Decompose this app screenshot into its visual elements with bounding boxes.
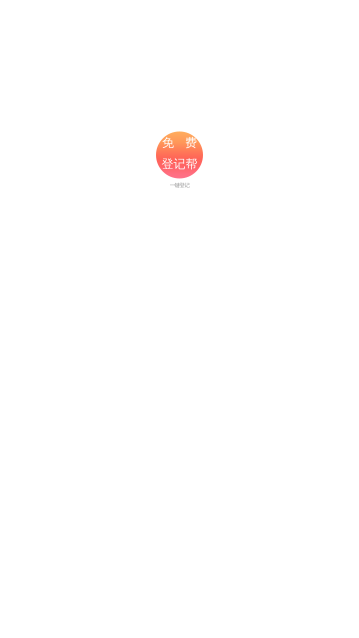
staticText: 一键登记	[169, 182, 189, 189]
staticText: 费	[185, 135, 197, 150]
staticText: 登记帮	[161, 157, 197, 171]
staticText: 免	[162, 135, 174, 150]
